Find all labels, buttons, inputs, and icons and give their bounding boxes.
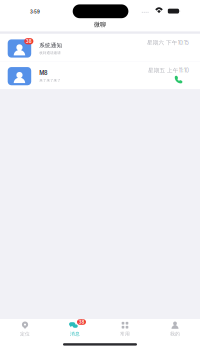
staticText: 收到通话邀请 [39,50,61,55]
staticText: 消息 [70,331,80,337]
staticText: 3:59 [30,9,40,15]
staticText: 来了来了来了 [39,78,61,83]
staticText: 定位 [20,331,30,337]
staticText: 系统通知 [39,42,62,49]
staticText: 38 [78,319,84,325]
button[interactable]: 我的 [150,319,200,342]
staticText: 星期五 上午11:10 [148,67,188,74]
button[interactable]: 38 [0,34,200,61]
staticText: 我的 [170,331,180,337]
staticText: 星期六 下午10:15 [147,39,188,46]
staticText: 38 [26,38,32,44]
button[interactable]: 常用 [100,319,150,342]
button[interactable]: 定位 [0,319,50,342]
staticText: 微聊 [94,21,106,28]
staticText: 常用 [120,331,130,337]
button[interactable]: 38 [50,319,100,342]
button[interactable]: M8 [0,61,200,89]
staticText: M8 [39,70,48,76]
